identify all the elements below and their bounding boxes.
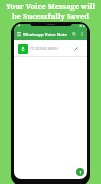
button[interactable]: Rename: [72, 45, 79, 52]
button[interactable]: More options: [78, 30, 86, 38]
staticText: PTT-20230402-WA0054: [30, 47, 58, 51]
button[interactable]: Record voice note: [76, 168, 84, 176]
staticText: be Sucessfully Saved: [12, 11, 89, 21]
staticText: Your Voice Message will: [6, 1, 95, 11]
button[interactable]: Menu: [15, 30, 22, 37]
staticText: Whatsapp Voice Note: [23, 31, 67, 37]
button[interactable]: Search: [70, 30, 78, 38]
button[interactable]: PTT-20230402-WA0054: [14, 41, 87, 56]
